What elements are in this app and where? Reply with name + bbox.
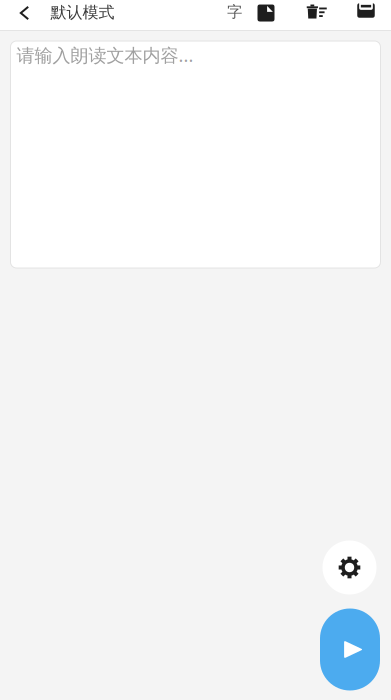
staticText: 默认模式	[50, 3, 114, 22]
button[interactable]: Play	[320, 608, 380, 690]
staticText: 字	[227, 2, 242, 22]
button[interactable]: Clear text	[299, 0, 333, 26]
button[interactable]: Settings	[322, 540, 377, 594]
button[interactable]: Save	[350, 0, 382, 25]
button[interactable]: Font size	[219, 0, 249, 27]
button[interactable]: Back	[9, 0, 39, 28]
button[interactable]: Documents	[250, 0, 282, 28]
staticText: 请输入朗读文本内容...	[16, 42, 193, 67]
